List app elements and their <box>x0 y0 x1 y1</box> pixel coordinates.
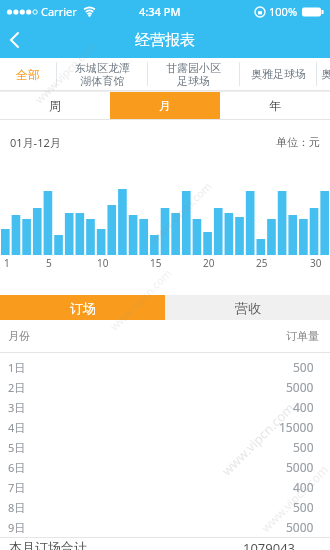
staticText: www.vipcn.com <box>107 266 174 333</box>
staticText: 经营报表 <box>135 31 195 50</box>
button[interactable]: 9日 <box>0 517 330 537</box>
button[interactable]: 6日 <box>0 457 330 477</box>
staticText: 7日 <box>8 480 26 495</box>
staticText: 500 <box>293 359 314 375</box>
staticText: 单位：元 <box>276 135 320 149</box>
button[interactable]: 3日 <box>0 397 330 417</box>
button[interactable]: 7日 <box>0 477 330 497</box>
button[interactable]: 8日 <box>0 497 330 517</box>
button[interactable]: 月 <box>110 92 220 119</box>
staticText: 8日 <box>8 500 26 515</box>
button[interactable] <box>0 22 30 58</box>
staticText: 10 <box>97 256 109 270</box>
button[interactable]: 全部 <box>0 58 56 90</box>
staticText: 01月-12月 <box>10 135 61 150</box>
staticText: 5 <box>46 256 52 270</box>
staticText: 订单量 <box>286 329 319 343</box>
staticText: 营收 <box>235 300 261 316</box>
staticText: 25 <box>256 256 268 270</box>
button[interactable]: 营收 <box>165 295 330 320</box>
staticText: 400 <box>293 479 314 495</box>
staticText: 东城区龙潭 湖体育馆 <box>75 61 130 88</box>
staticText: 500 <box>293 439 314 455</box>
staticText: 2日 <box>8 380 26 395</box>
button[interactable]: 1日 <box>0 357 330 377</box>
staticText: 3日 <box>8 400 26 415</box>
button[interactable]: 5日 <box>0 437 330 457</box>
staticText: 15000 <box>279 419 314 435</box>
button[interactable]: 甘露园小区 足球场 <box>148 58 239 90</box>
staticText: 1 <box>4 256 10 270</box>
staticText: 500 <box>293 499 314 515</box>
staticText: 100% <box>269 4 298 19</box>
staticText: 1079043 <box>243 539 296 550</box>
staticText: www.vipcn.com <box>257 461 330 535</box>
button[interactable]: 年 <box>220 92 330 119</box>
staticText: Carrier <box>41 4 77 19</box>
staticText: 30 <box>310 256 322 270</box>
button[interactable]: 2日 <box>0 377 330 397</box>
staticText: 本月订场合计 <box>9 539 87 550</box>
staticText: 年 <box>269 98 281 113</box>
staticText: www.vipcn.com <box>218 399 298 479</box>
staticText: 9日 <box>8 520 26 535</box>
staticText: 400 <box>293 399 314 415</box>
staticText: 周 <box>49 98 61 113</box>
staticText: 5000 <box>286 519 314 535</box>
staticText: 5日 <box>8 440 26 455</box>
staticText: 15 <box>150 256 162 270</box>
staticText: 4日 <box>8 420 26 435</box>
staticText: 4:34 PM <box>139 4 181 19</box>
staticText: 20 <box>203 256 215 270</box>
staticText: 1日 <box>8 360 26 375</box>
staticText: www.vipcn.com <box>147 179 214 246</box>
button[interactable]: 4日 <box>0 417 330 437</box>
staticText: 奥 <box>321 67 330 81</box>
button[interactable]: 订场 <box>0 295 165 320</box>
staticText: 全部 <box>16 67 40 82</box>
staticText: 奥雅足球场 <box>251 67 306 81</box>
staticText: 5000 <box>286 459 314 475</box>
staticText: 月份 <box>8 329 30 343</box>
staticText: www.vipcn.com <box>32 39 99 106</box>
staticText: 月 <box>159 98 171 113</box>
staticText: 订场 <box>70 300 96 316</box>
staticText: 甘露园小区 足球场 <box>166 61 221 88</box>
button[interactable]: 奥 <box>317 58 330 90</box>
button[interactable]: 周 <box>0 92 110 119</box>
button[interactable]: 东城区龙潭 湖体育馆 <box>57 58 147 90</box>
button[interactable]: 奥雅足球场 <box>240 58 316 90</box>
staticText: 6日 <box>8 460 26 475</box>
staticText: 5000 <box>286 379 314 395</box>
